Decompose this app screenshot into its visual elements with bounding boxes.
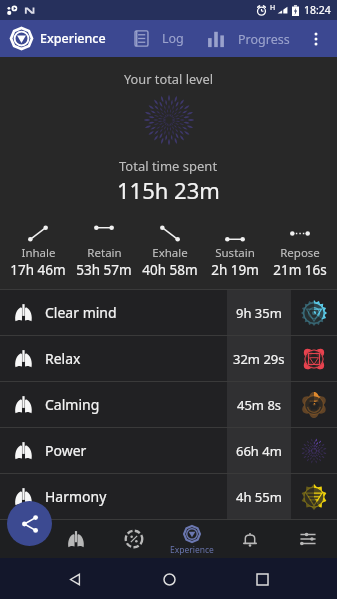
- button[interactable]: Repose: [267, 225, 332, 279]
- button[interactable]: Reminders: [221, 519, 279, 558]
- button[interactable]: Home: [151, 561, 187, 597]
- staticText: Harmony: [45, 487, 107, 506]
- staticText: 4h 55m: [236, 488, 282, 506]
- button[interactable]: Inhale: [5, 225, 71, 279]
- button[interactable]: Clear mind: [0, 290, 337, 335]
- button[interactable]: Relax: [0, 336, 337, 381]
- button[interactable]: Recents: [244, 561, 280, 597]
- button[interactable]: Exhale: [137, 225, 202, 279]
- staticText: 21m 16s: [273, 261, 327, 279]
- staticText: Clear mind: [45, 303, 117, 322]
- staticText: Power: [45, 441, 87, 460]
- staticText: 53h 57m: [76, 261, 132, 279]
- staticText: Log: [162, 30, 184, 47]
- button[interactable]: Calming: [0, 382, 337, 427]
- staticText: 40h 58m: [142, 261, 198, 279]
- button[interactable]: Breathe: [46, 519, 105, 558]
- staticText: H: [270, 3, 276, 13]
- button[interactable]: Power: [0, 428, 337, 473]
- staticText: Retain: [87, 245, 122, 261]
- button[interactable]: Share: [7, 501, 52, 546]
- staticText: 9h 35m: [236, 304, 282, 322]
- staticText: Experience: [170, 544, 214, 556]
- button[interactable]: Harmony: [0, 474, 337, 519]
- staticText: 2h 19m: [211, 261, 259, 279]
- button[interactable]: Back: [57, 561, 93, 597]
- staticText: Progress: [238, 31, 290, 48]
- staticText: Inhale: [21, 245, 56, 261]
- staticText: 115h 23m: [117, 175, 220, 205]
- button[interactable]: More options: [300, 23, 332, 55]
- staticText: 32m 29s: [233, 350, 285, 368]
- button[interactable]: Experience: [0, 28, 115, 49]
- staticText: Sustain: [215, 245, 255, 261]
- button[interactable]: Progress: [206, 30, 291, 48]
- staticText: 17h 46m: [10, 261, 66, 279]
- staticText: 66h 4m: [236, 442, 282, 460]
- staticText: Calming: [45, 395, 100, 414]
- staticText: 45m 8s: [237, 396, 282, 414]
- button[interactable]: Sustain: [202, 225, 267, 279]
- button[interactable]: Stats: [105, 519, 163, 558]
- staticText: Total time spent: [119, 157, 218, 175]
- staticText: Your total level: [124, 70, 213, 87]
- staticText: Relax: [45, 349, 81, 368]
- staticText: 18:24: [304, 3, 331, 17]
- staticText: Repose: [280, 245, 320, 261]
- button[interactable]: Log: [132, 30, 185, 47]
- button[interactable]: Settings: [279, 519, 337, 558]
- button[interactable]: Retain: [71, 225, 137, 279]
- staticText: Experience: [40, 30, 106, 47]
- button[interactable]: Experience: [163, 519, 221, 558]
- staticText: Exhale: [152, 245, 188, 261]
